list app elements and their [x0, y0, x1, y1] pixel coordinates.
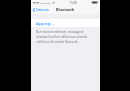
staticText: nell'elenco dei contatti Bluetooth.: [36, 40, 79, 44]
staticText: Bluetooth: [56, 7, 75, 12]
staticText: 15:30: [70, 1, 77, 5]
button[interactable]: Sistema: [31, 5, 51, 14]
button[interactable]: Aggiungi ...: [31, 19, 100, 27]
staticText: Aggiungi ...: [36, 21, 55, 26]
staticText: Non riceverai telefonate, messaggi né: [36, 30, 84, 34]
staticText: chiamate FaceTime dall'account presenti: [36, 35, 88, 39]
staticText: vodafone: [40, 1, 51, 4]
staticText: Sistema: [36, 7, 49, 12]
